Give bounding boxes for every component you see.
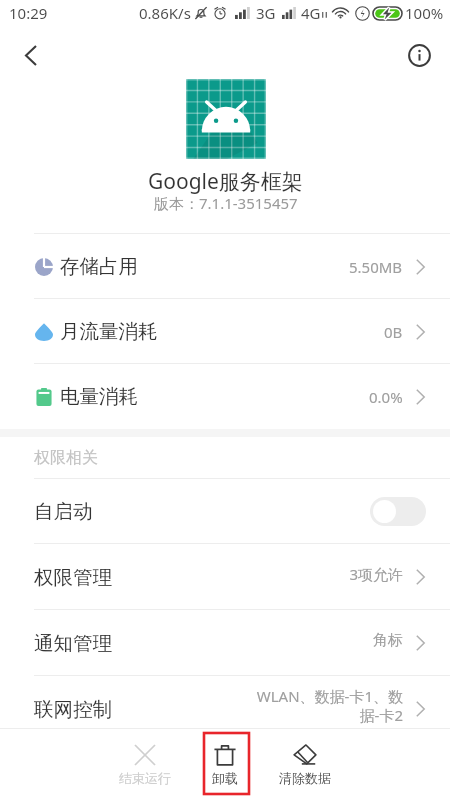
button[interactable]: 电量消耗 bbox=[0, 364, 450, 429]
button[interactable]: 清除数据 bbox=[265, 734, 345, 795]
staticText: 5.50MB bbox=[349, 257, 403, 277]
staticText: 4G bbox=[301, 3, 321, 23]
staticText: 卸载 bbox=[212, 770, 238, 786]
button[interactable]: 权限管理 bbox=[0, 544, 450, 610]
staticText: WLAN、数据-卡1、数据-卡2 bbox=[256, 688, 403, 726]
button[interactable]: 结束运行 bbox=[105, 734, 185, 795]
button[interactable]: 存储占用 bbox=[0, 234, 450, 299]
button[interactable]: Back bbox=[6, 30, 56, 80]
staticText: 0B bbox=[384, 322, 403, 342]
button[interactable]: 月流量消耗 bbox=[0, 299, 450, 364]
staticText: 月流量消耗 bbox=[60, 319, 158, 344]
staticText: Google服务框架 bbox=[148, 167, 303, 196]
button[interactable]: 卸载 bbox=[185, 734, 265, 795]
staticText: 3G bbox=[256, 3, 276, 23]
staticText: 10:29 bbox=[9, 3, 48, 23]
staticText: 0.0% bbox=[369, 387, 403, 407]
staticText: 通知管理 bbox=[34, 631, 112, 656]
staticText: 权限管理 bbox=[34, 565, 112, 590]
staticText: 联网控制 bbox=[34, 697, 112, 722]
staticText: 电量消耗 bbox=[60, 384, 138, 409]
button[interactable]: 通知管理 bbox=[0, 610, 450, 676]
staticText: 权限相关 bbox=[34, 448, 98, 468]
button[interactable]: 联网控制 bbox=[0, 676, 450, 742]
staticText: 存储占用 bbox=[60, 254, 138, 279]
staticText: 自启动 bbox=[34, 499, 93, 524]
staticText: 3项允许 bbox=[349, 566, 403, 585]
button[interactable]: App info bbox=[394, 30, 444, 80]
staticText: 清除数据 bbox=[279, 770, 331, 786]
staticText: 角标 bbox=[373, 632, 403, 650]
staticText: 版本：7.1.1-3515457 bbox=[154, 193, 298, 213]
staticText: 100% bbox=[405, 3, 444, 23]
staticText: 结束运行 bbox=[119, 770, 171, 786]
staticText: 0.86K/s bbox=[139, 3, 191, 23]
button[interactable]: 自启动 bbox=[0, 479, 450, 544]
